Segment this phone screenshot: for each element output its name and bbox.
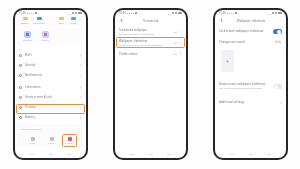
button[interactable]: Lock screen wallpaper slideshow: [215, 27, 286, 35]
button[interactable]: Back: [119, 18, 124, 23]
button[interactable]: Home screen & lock: [15, 92, 86, 102]
staticText: Off: [173, 30, 177, 33]
staticText: Off: [173, 41, 177, 44]
staticText: Light: [58, 21, 64, 24]
staticText: Notifications: [25, 73, 43, 77]
button[interactable]: Light: [58, 17, 64, 24]
button[interactable]: Profile videos: [115, 48, 186, 59]
button[interactable]: Battery: [15, 112, 86, 122]
button[interactable]: Browser: [23, 31, 32, 42]
button[interactable]: Notes: [44, 134, 59, 147]
button[interactable]: Scheduled wallpaper: [115, 26, 186, 37]
staticText: Wallpaper slideshow: [119, 39, 147, 43]
button[interactable]: Battery: [21, 17, 30, 24]
staticText: Daily: [275, 40, 282, 44]
button[interactable]: Wi-Fi: [15, 50, 86, 60]
staticText: Battery: [21, 21, 30, 24]
staticText: 46: [168, 12, 171, 15]
staticText: Data saver: [33, 21, 45, 24]
staticText: Connection: [25, 85, 41, 89]
staticText: Lock screen wallpaper slideshow: [219, 29, 264, 33]
staticText: 46: [68, 12, 71, 15]
button[interactable]: Home screen wallpaper slideshow: [215, 81, 286, 91]
staticText: Notes: [48, 142, 55, 145]
staticText: Profile videos: [119, 52, 138, 56]
staticText: Off: [173, 52, 177, 55]
staticText: Wi-Fi: [25, 53, 32, 57]
button[interactable]: Files: [25, 134, 40, 147]
staticText: Recently installed: [21, 127, 41, 130]
button[interactable]: Back: [219, 18, 224, 23]
staticText: Home screen wallpaper slideshow: [219, 82, 266, 86]
staticText: Browser: [23, 39, 32, 42]
button[interactable]: Wallpaper slideshow: [115, 37, 186, 48]
staticText: Change wallpaper automatically: [119, 33, 154, 36]
staticText: Use the same wallpapers as lock screen: [219, 87, 262, 90]
staticText: Battery: [25, 115, 35, 119]
staticText: 10:06: [19, 11, 26, 15]
button[interactable]: Connection: [15, 82, 86, 92]
button[interactable]: Gallery: [41, 31, 49, 42]
staticText: Gallery: [41, 39, 49, 42]
button[interactable]: Additional settings: [215, 98, 286, 106]
staticText: 10:06: [219, 11, 226, 15]
staticText: Sounds: [25, 63, 36, 67]
staticText: Wallpaper slideshow: [237, 19, 265, 23]
button[interactable]: Sounds: [15, 60, 86, 70]
staticText: Additional settings: [219, 100, 245, 104]
button[interactable]: Changes are saved: [215, 38, 286, 46]
button[interactable]: Clean: [70, 17, 77, 24]
button[interactable]: Themes: [62, 134, 77, 147]
button[interactable]: Notifications: [15, 70, 86, 80]
staticText: Clean: [70, 21, 77, 24]
button[interactable]: Add wallpaper: [221, 50, 234, 72]
staticText: 10:06: [119, 11, 126, 15]
button[interactable]: Data saver: [33, 17, 45, 24]
staticText: Files: [30, 142, 35, 145]
staticText: Scheduled wallpaper: [119, 28, 148, 32]
staticText: Changes are saved: [219, 40, 245, 44]
staticText: Create a slideshow with your wallpapers: [119, 44, 163, 47]
staticText: Home screen & lock: [25, 95, 52, 99]
button[interactable]: Themes: [15, 102, 86, 112]
staticText: Themes: [65, 142, 74, 145]
staticText: 46: [268, 12, 271, 15]
staticText: Themes: [25, 105, 36, 109]
staticText: Themes lab: [143, 19, 159, 23]
